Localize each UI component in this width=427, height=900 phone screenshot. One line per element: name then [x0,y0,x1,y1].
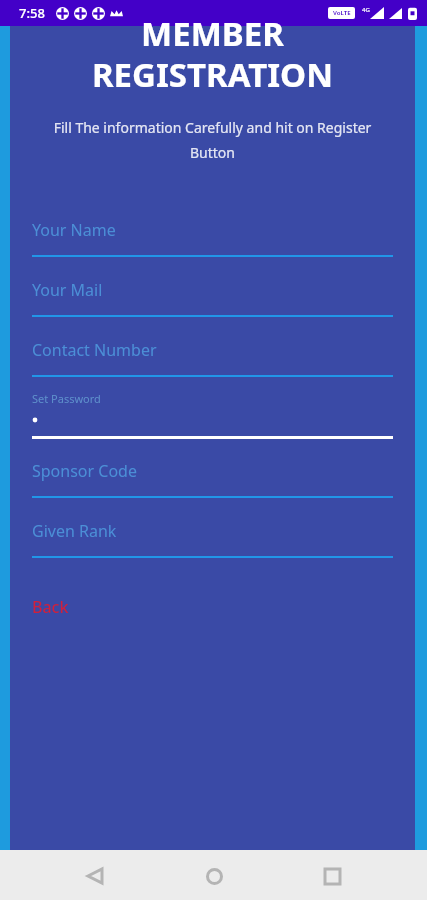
staticText: 7:58 [19,4,45,22]
button[interactable]: Back [30,592,71,622]
button[interactable]: Your Mail [10,279,415,317]
staticText: 4G [362,6,370,14]
button[interactable]: Recent apps [308,852,356,900]
button[interactable]: Home [190,852,238,900]
button[interactable]: Given Rank [10,520,415,558]
staticText: Your Name [32,219,116,241]
button[interactable]: Contact Number [10,339,415,377]
staticText: Back [32,596,69,618]
staticText: Given Rank [32,520,117,542]
button[interactable]: Your Name [10,219,415,257]
staticText: MEMBER REGISTRATION [10,11,415,97]
staticText: VoLTE [333,9,351,17]
staticText: Contact Number [32,339,157,361]
button[interactable]: Set Password [10,391,415,439]
staticText: Fill The information Carefully and hit o… [32,118,393,162]
button[interactable]: Back [71,852,119,900]
staticText: Your Mail [32,279,103,301]
staticText: Sponsor Code [32,460,137,482]
button[interactable]: Sponsor Code [10,460,415,498]
staticText: Set Password [32,391,101,406]
